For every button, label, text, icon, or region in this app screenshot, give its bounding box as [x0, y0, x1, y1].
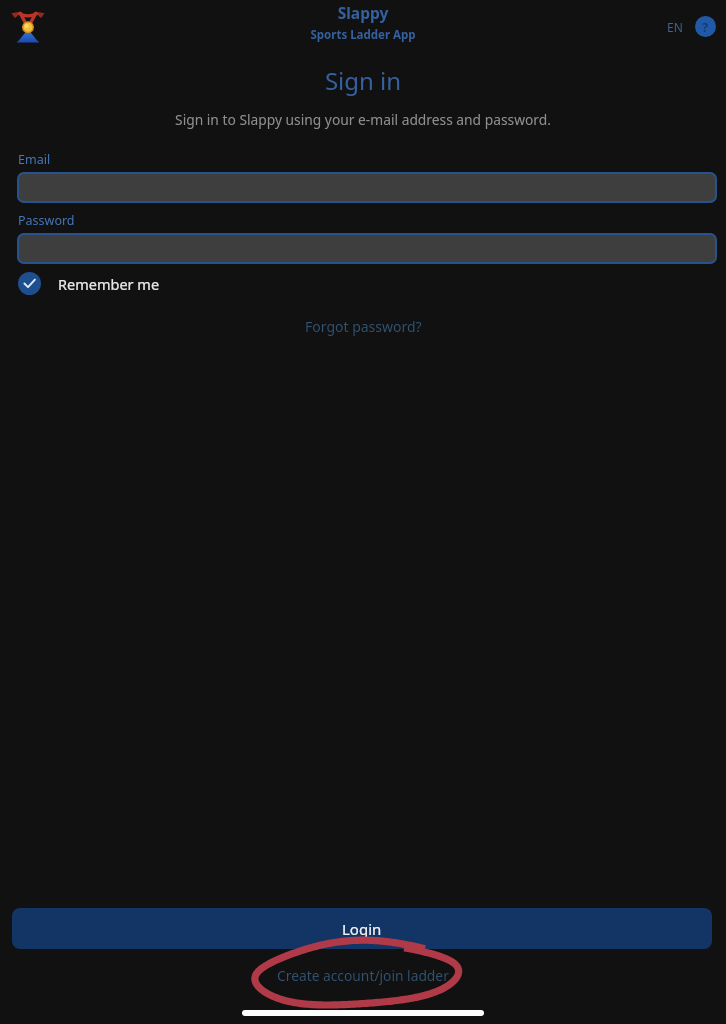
button[interactable]: Forgot password?	[295, 312, 432, 341]
staticText: Sign in	[0, 64, 726, 97]
button[interactable]: Help	[695, 16, 716, 37]
button[interactable]: Password field	[17, 233, 717, 264]
staticText: Create account/join ladder	[277, 966, 449, 985]
staticText: Slappy	[0, 2, 726, 23]
button[interactable]: Slappy logo	[11, 9, 45, 43]
staticText: Password	[18, 212, 75, 229]
staticText: Sports Ladder App	[0, 27, 726, 43]
staticText: Forgot password?	[305, 317, 422, 336]
button[interactable]: Create account/join ladder	[265, 960, 461, 991]
staticText: Remember me	[58, 274, 160, 294]
staticText: Sign in to Slappy using your e-mail addr…	[0, 110, 726, 129]
staticText: EN	[667, 19, 683, 35]
staticText: Email	[18, 151, 51, 168]
button[interactable]: Remember me	[18, 272, 160, 295]
button[interactable]: EN	[663, 16, 687, 38]
staticText: Login	[342, 919, 382, 939]
staticText: ?	[702, 18, 709, 36]
button[interactable]: Email field	[17, 172, 717, 203]
button[interactable]: Login	[12, 908, 712, 949]
